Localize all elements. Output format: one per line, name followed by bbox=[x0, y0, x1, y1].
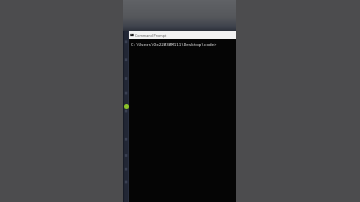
other: Command Prompt icon bbox=[130, 33, 134, 37]
button[interactable]: Sidebar bbox=[123, 31, 129, 202]
other: Running indicator bbox=[124, 104, 129, 109]
staticText: C:\Users\Ox22030M111\Desktop\code> bbox=[131, 42, 217, 48]
button[interactable]: Command Prompt icon bbox=[130, 31, 235, 39]
staticText: Command Prompt bbox=[135, 33, 167, 38]
